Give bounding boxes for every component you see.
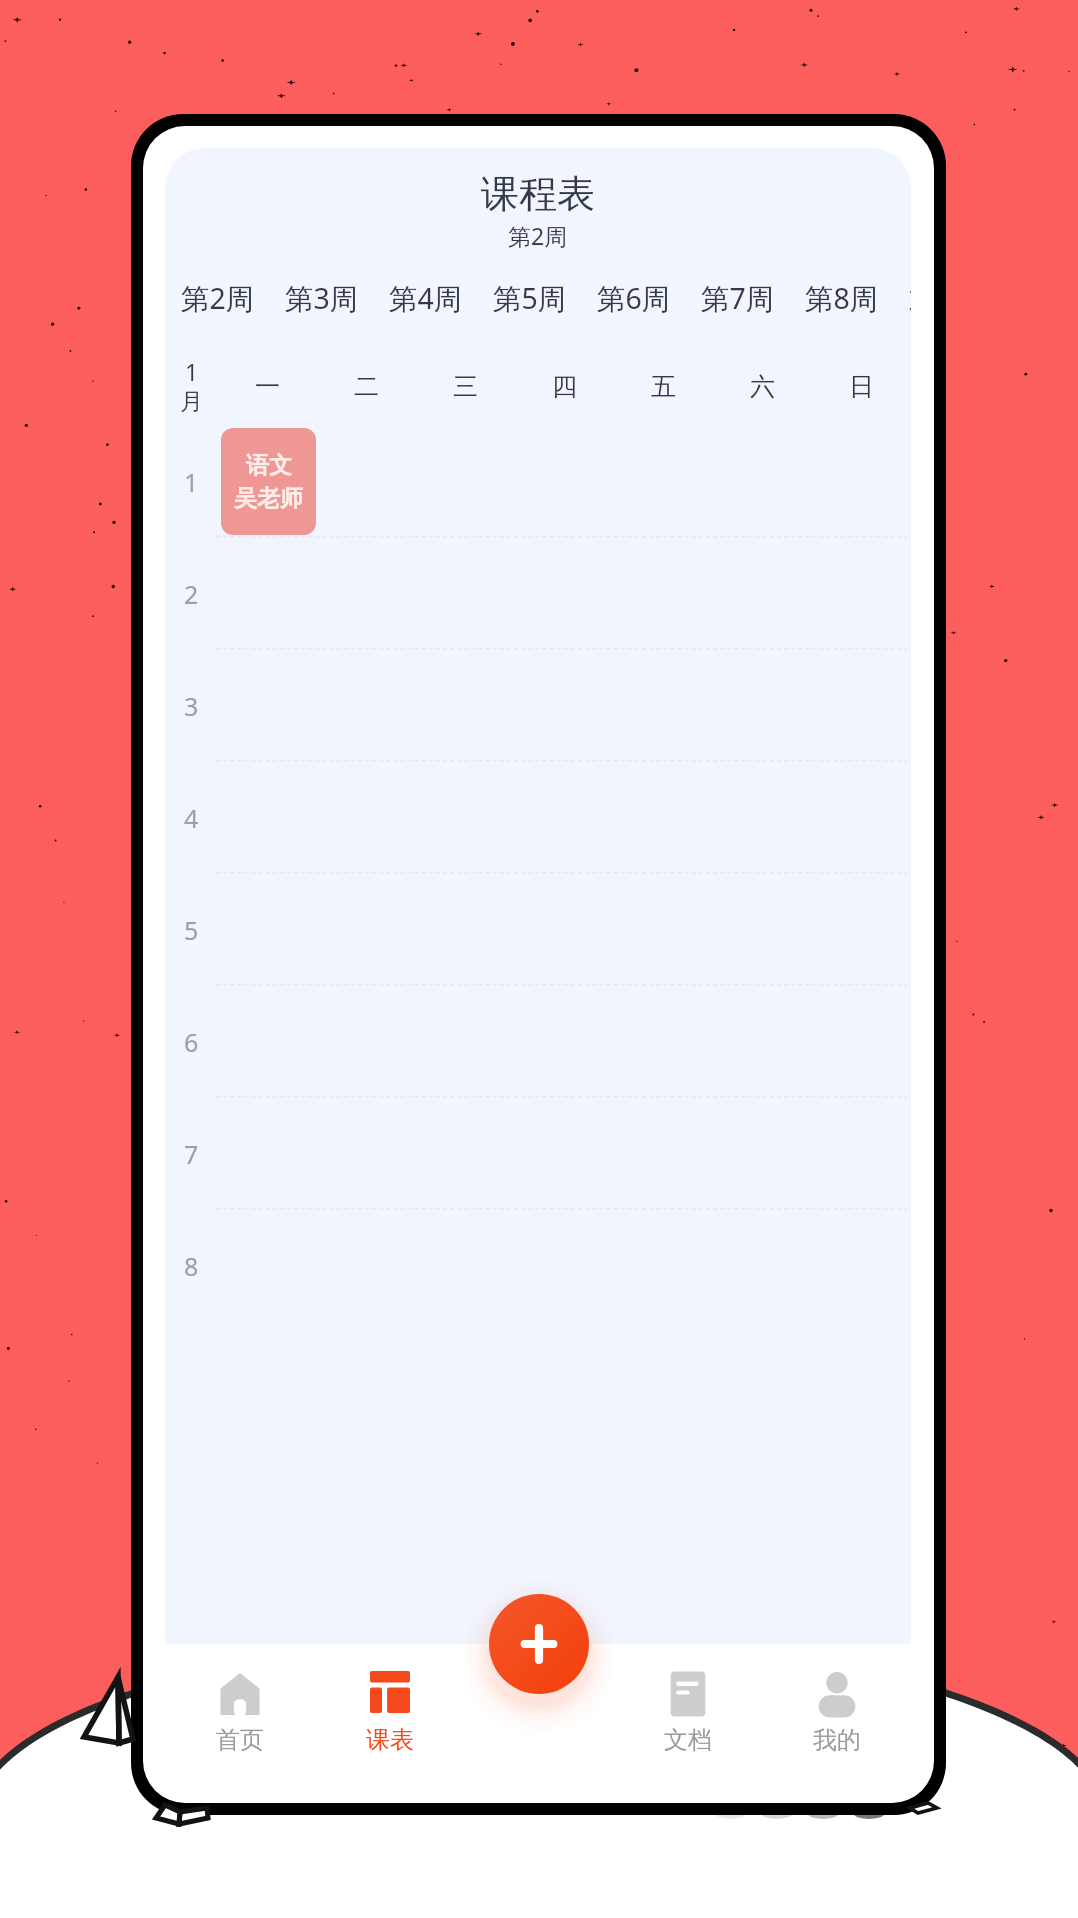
staticText: 首页 — [216, 1725, 264, 1755]
staticText: 7 — [184, 1137, 199, 1171]
button[interactable]: 第2周 — [181, 274, 285, 322]
button[interactable]: 首页 — [165, 1644, 315, 1803]
staticText: 1 — [184, 465, 199, 499]
button[interactable]: 我的 — [762, 1644, 911, 1803]
staticText: 第2周 — [508, 220, 568, 251]
staticText: 第8周 — [805, 279, 879, 318]
staticText: 4 — [184, 801, 199, 835]
button[interactable]: 第8周 — [805, 274, 909, 322]
staticText: 四 — [552, 371, 577, 402]
staticText: 三 — [453, 371, 478, 402]
staticText: 文档 — [664, 1725, 712, 1755]
staticText: 五 — [651, 371, 676, 402]
staticText: 六 — [750, 371, 775, 402]
staticText: 第4周 — [389, 279, 463, 318]
staticText: 8 — [184, 1249, 199, 1283]
button[interactable]: 第3周 — [285, 274, 389, 322]
staticText: 第7周 — [701, 279, 775, 318]
staticText: 2 — [184, 577, 199, 611]
staticText: 课表 — [366, 1725, 414, 1755]
button[interactable]: 第5周 — [493, 274, 597, 322]
button[interactable]: 第6周 — [597, 274, 701, 322]
button[interactable]: 语文 — [221, 428, 316, 535]
button[interactable]: Add course — [489, 1594, 589, 1694]
button[interactable]: 第7周 — [701, 274, 805, 322]
staticText: 第2周 — [181, 279, 255, 318]
staticText: 第6周 — [597, 279, 671, 318]
staticText: 第5周 — [493, 279, 567, 318]
button[interactable]: 课表 — [315, 1644, 464, 1803]
button[interactable]: 文档 — [613, 1644, 762, 1803]
staticText: 1 — [185, 356, 199, 387]
staticText: 3 — [184, 689, 199, 723]
staticText: 课程表 — [481, 170, 595, 218]
staticText: 第3周 — [285, 279, 359, 318]
staticText: 一 — [255, 371, 280, 402]
button[interactable]: 第9周 — [909, 274, 911, 322]
staticText: 第9周 — [909, 280, 911, 316]
staticText: 日 — [849, 371, 874, 402]
staticText: 二 — [354, 371, 379, 402]
staticText: 我的 — [813, 1725, 861, 1755]
staticText: 吴老师 — [234, 484, 303, 513]
staticText: 月 — [180, 387, 203, 416]
staticText: 语文 — [246, 451, 292, 480]
staticText: 6 — [184, 1025, 199, 1059]
staticText: 5 — [184, 913, 199, 947]
button[interactable]: 第4周 — [389, 274, 493, 322]
